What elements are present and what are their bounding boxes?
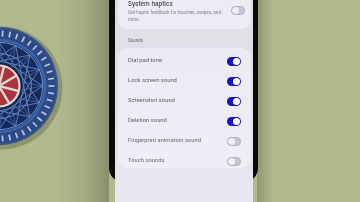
button[interactable]: Screenshot sound xyxy=(118,91,251,111)
button[interactable]: Deletion sound xyxy=(118,111,251,131)
button[interactable]: System haptics xyxy=(118,0,251,29)
staticText: System haptics xyxy=(128,0,173,8)
button[interactable]: Toggle xyxy=(227,137,241,146)
staticText: Lock screen sound xyxy=(128,77,177,84)
staticText: Get haptic feedback for touches, swipes,… xyxy=(128,10,222,22)
button[interactable]: Toggle xyxy=(227,157,241,166)
button[interactable]: Dial pad tone xyxy=(118,51,251,71)
button[interactable]: Toggle xyxy=(227,57,241,66)
staticText: Screenshot sound xyxy=(128,97,175,104)
staticText: Sounds xyxy=(128,38,144,43)
button[interactable]: Toggle xyxy=(231,6,245,15)
button[interactable]: Toggle xyxy=(227,97,241,106)
staticText: Dial pad tone xyxy=(128,57,163,64)
button[interactable]: Lock screen sound xyxy=(118,71,251,91)
staticText: Touch sounds xyxy=(128,157,165,164)
button[interactable]: Touch sounds xyxy=(118,151,251,168)
button[interactable]: Toggle xyxy=(227,77,241,86)
button[interactable]: Fingerprint animation sound xyxy=(118,131,251,151)
button[interactable]: Toggle xyxy=(227,117,241,126)
staticText: Deletion sound xyxy=(128,117,167,124)
staticText: Fingerprint animation sound xyxy=(128,137,202,144)
